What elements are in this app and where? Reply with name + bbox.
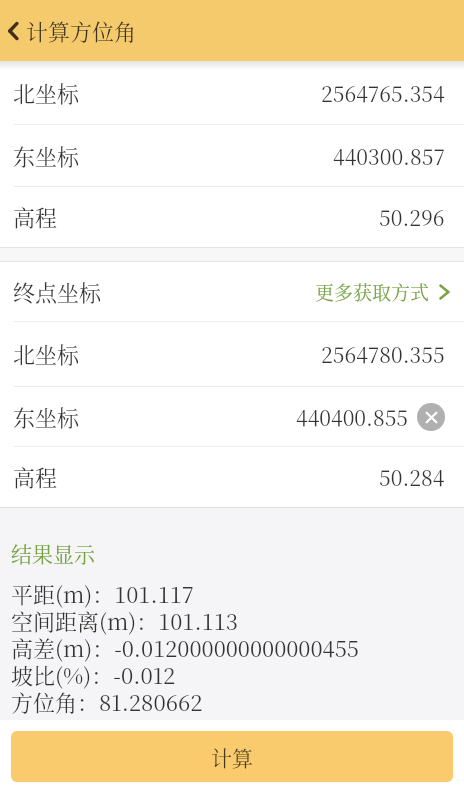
staticText: 2564765.354 xyxy=(321,78,445,108)
staticText: 2564780.355 xyxy=(321,339,445,369)
staticText: 计算 xyxy=(211,742,253,772)
staticText: 高程 xyxy=(13,201,58,233)
staticText: 高程 xyxy=(13,461,58,493)
button[interactable]: Clear value xyxy=(417,403,445,431)
staticText: 440400.855 xyxy=(296,402,409,432)
button[interactable]: 更多获取方式 xyxy=(315,278,453,305)
button[interactable]: 高程 xyxy=(0,447,464,507)
staticText: 北坐标 xyxy=(13,77,80,109)
staticText: 终点坐标 xyxy=(13,276,102,308)
button[interactable]: Back xyxy=(0,18,26,44)
staticText: 东坐标 xyxy=(13,140,80,172)
button[interactable]: 高程 xyxy=(0,187,464,247)
button[interactable]: 计算 xyxy=(11,731,453,782)
staticText: 50.296 xyxy=(379,202,445,232)
button[interactable]: 北坐标 xyxy=(0,61,464,124)
staticText: 坡比(%)：-0.012 xyxy=(11,659,176,691)
staticText: 50.284 xyxy=(379,462,445,492)
staticText: 平距(m)：101.117 xyxy=(11,578,194,610)
staticText: 更多获取方式 xyxy=(315,278,430,305)
button[interactable]: 东坐标 xyxy=(0,125,464,186)
button[interactable]: 终点坐标 xyxy=(0,262,464,321)
staticText: 东坐标 xyxy=(13,401,80,433)
button[interactable]: 东坐标 xyxy=(0,387,464,446)
staticText: 北坐标 xyxy=(13,338,80,370)
staticText: 空间距离(m)：101.113 xyxy=(11,605,238,637)
staticText: 高差(m)：-0.012000000000000455 xyxy=(11,632,359,664)
staticText: 440300.857 xyxy=(333,141,445,171)
staticText: 结果显示 xyxy=(11,538,95,568)
staticText: 方位角：81.280662 xyxy=(11,686,203,718)
staticText: 计算方位角 xyxy=(26,15,137,47)
button[interactable]: 北坐标 xyxy=(0,322,464,386)
